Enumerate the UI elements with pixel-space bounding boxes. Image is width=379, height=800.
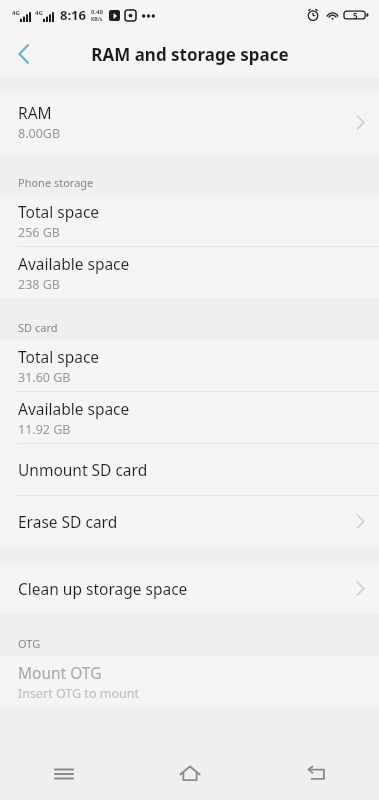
staticText: Unmount SD card [18, 459, 148, 480]
staticText: RAM and storage space [91, 43, 289, 66]
staticText: Erase SD card [18, 511, 118, 532]
staticText: 11.92 GB [18, 421, 71, 438]
staticText: OTG [18, 636, 41, 651]
staticText: KB/s [91, 16, 103, 23]
button[interactable]: Total space [0, 195, 379, 246]
button[interactable]: Recents [0, 748, 127, 800]
button[interactable]: Total space [0, 340, 379, 391]
staticText: Total space [18, 201, 100, 222]
staticText: Available space [18, 253, 130, 274]
staticText: 8:16 [60, 6, 86, 24]
staticText: Insert OTG to mount [18, 685, 139, 702]
staticText: Mount OTG [18, 662, 102, 683]
staticText: 256 GB [18, 224, 60, 241]
staticText: RAM [18, 102, 52, 123]
staticText: 8.00GB [18, 125, 61, 142]
button[interactable]: Clean up storage space [0, 563, 379, 614]
staticText: Available space [18, 398, 130, 419]
button[interactable]: RAM [0, 91, 379, 153]
button[interactable]: Back [0, 30, 48, 78]
staticText: SD card [18, 320, 58, 335]
button[interactable]: Mount OTG [0, 656, 379, 707]
staticText: 5 [353, 10, 358, 21]
staticText: 4G [12, 9, 20, 17]
button[interactable]: Back [253, 748, 379, 800]
staticText: 31.60 GB [18, 369, 71, 386]
staticText: Total space [18, 346, 100, 367]
button[interactable]: Erase SD card [0, 496, 379, 547]
staticText: Phone storage [18, 175, 94, 190]
button[interactable]: Unmount SD card [0, 444, 379, 495]
staticText: 4G [35, 9, 43, 17]
staticText: 238 GB [18, 276, 60, 293]
staticText: 0.40 [91, 8, 103, 16]
staticText: Clean up storage space [18, 578, 188, 599]
button[interactable]: Home [127, 748, 253, 800]
button[interactable]: Available space [0, 247, 379, 298]
button[interactable]: Available space [0, 392, 379, 443]
